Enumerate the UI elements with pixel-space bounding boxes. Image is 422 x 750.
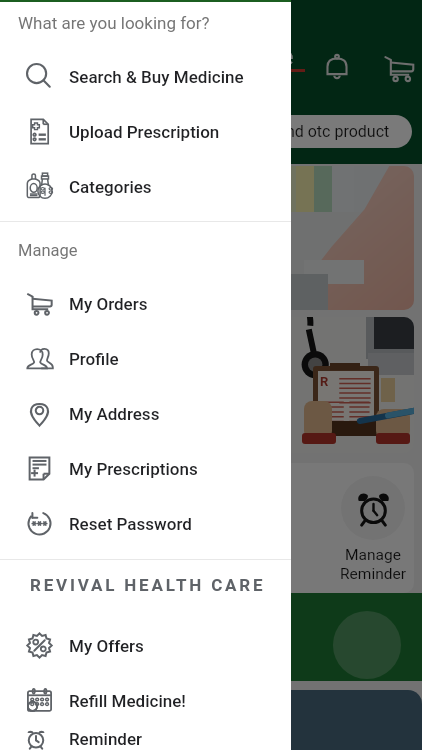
staticText: Reset Password [69,514,192,534]
button[interactable]: Reset Password [0,496,291,551]
button[interactable]: My Address [0,386,291,441]
staticText: Search & Buy Medicine [69,67,244,87]
button[interactable]: Search & Buy Medicine [0,49,291,104]
staticText: REVIVAL HEALTH CARE [30,575,266,595]
staticText: Manage [18,241,78,260]
staticText: Upload Prescription [69,122,220,142]
button[interactable]: Manage Reminder [313,476,414,583]
staticText: R [320,374,329,389]
button[interactable]: Refill Medicine! [0,673,291,728]
staticText: My Orders [69,294,148,314]
button[interactable]: Profile [0,331,291,386]
staticText: Medicine [196,43,294,71]
button[interactable]: My Offers [0,618,291,673]
button[interactable]: Notifications [320,51,354,85]
staticText: My Address [69,404,160,424]
staticText: Reminder [69,729,143,749]
button[interactable]: Cart [382,51,416,85]
button[interactable]: My Orders [0,276,291,331]
staticText: Refill Medicine! [69,691,186,711]
staticText: Order on WhatsApp [22,625,205,650]
button[interactable]: Upload Prescription [0,104,291,159]
button[interactable]: My Prescriptions [0,441,291,496]
button[interactable]: Reminder [0,728,291,750]
staticText: Manage Reminder [340,546,406,583]
staticText: My Prescriptions [69,459,198,479]
staticText: Search for medicine and otc product [131,122,390,141]
staticText: Order Refill [169,546,207,583]
button[interactable]: Order Refill [128,476,248,583]
staticText: Profile [69,349,119,369]
staticText: My Offers [69,636,144,656]
staticText: Categories [69,177,152,197]
staticText: What are you looking for? [18,13,210,33]
button[interactable]: Categories [0,159,291,214]
button[interactable]: Search for medicine and otc product [10,115,412,148]
